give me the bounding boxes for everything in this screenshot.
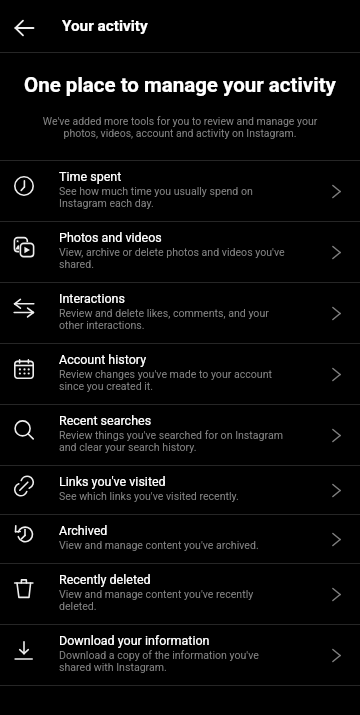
button[interactable]: Photos and videos — [0, 222, 360, 282]
button[interactable]: Archived — [0, 515, 360, 563]
button[interactable]: Download your information — [0, 625, 360, 685]
staticText: View, archive or delete photos and video… — [59, 246, 288, 270]
staticText: Time spent — [59, 169, 122, 184]
button[interactable]: Links you've visited — [0, 466, 360, 514]
staticText: Photos and videos — [59, 230, 162, 245]
button[interactable]: Interactions — [0, 283, 360, 343]
staticText: See which links you've visited recently. — [59, 490, 239, 502]
staticText: Download a copy of the information you'v… — [59, 649, 288, 673]
staticText: Archived — [59, 523, 108, 538]
button[interactable]: Recently deleted — [0, 564, 360, 624]
button[interactable]: Recent searches — [0, 405, 360, 465]
staticText: Links you've visited — [59, 474, 166, 489]
staticText: Review changes you've made to your accou… — [59, 368, 288, 392]
staticText: View and manage content you've recently … — [59, 588, 288, 612]
staticText: Recently deleted — [59, 572, 151, 587]
staticText: See how much time you usually spend on I… — [59, 185, 288, 209]
staticText: Review and delete likes, comments, and y… — [59, 307, 288, 331]
staticText: Review things you've searched for on Ins… — [59, 429, 288, 453]
button[interactable]: Time spent — [0, 161, 360, 221]
staticText: Recent searches — [59, 413, 152, 428]
staticText: Your activity — [62, 17, 148, 35]
button[interactable]: Account history — [0, 344, 360, 404]
staticText: View and manage content you've archived. — [59, 539, 259, 551]
staticText: Download your information — [59, 633, 210, 648]
staticText: One place to manage your activity — [24, 73, 336, 97]
staticText: Interactions — [59, 291, 125, 306]
button[interactable]: Back — [5, 8, 45, 48]
staticText: We've added more tools for you to review… — [40, 115, 320, 139]
staticText: Account history — [59, 352, 147, 367]
